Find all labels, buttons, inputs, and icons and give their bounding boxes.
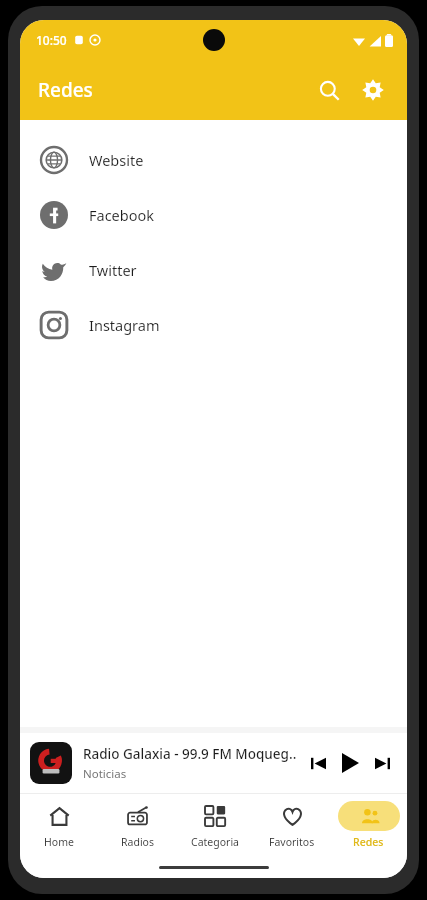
button[interactable]: Facebook	[20, 187, 407, 242]
staticText: Radios	[121, 835, 154, 849]
button[interactable]: Favoritos	[253, 794, 330, 856]
button[interactable]: Previous	[303, 748, 333, 778]
button[interactable]: Home	[20, 794, 98, 856]
button[interactable]: Settings	[351, 68, 395, 112]
staticText: Noticias	[83, 766, 127, 782]
button[interactable]: Play	[333, 746, 367, 780]
staticText: Twitter	[89, 260, 137, 280]
staticText: Redes	[38, 77, 93, 103]
button[interactable]: Next	[367, 748, 397, 778]
staticText: Favoritos	[269, 835, 315, 849]
button[interactable]: Instagram	[20, 297, 407, 352]
button[interactable]: Website	[20, 132, 407, 187]
button[interactable]: Radios	[98, 794, 176, 856]
staticText: Website	[89, 150, 144, 170]
staticText: Redes	[353, 835, 384, 849]
button[interactable]: Categoria	[176, 794, 253, 856]
staticText: Instagram	[89, 315, 160, 335]
button[interactable]: Redes	[330, 794, 407, 856]
button[interactable]: Twitter	[20, 242, 407, 297]
staticText: Radio Galaxia - 99.9 FM Moqueg..	[83, 745, 297, 763]
staticText: 10:50	[36, 32, 67, 48]
staticText: Facebook	[89, 205, 155, 225]
staticText: Home	[44, 835, 74, 849]
button[interactable]: Search	[307, 68, 351, 112]
staticText: Categoria	[191, 835, 239, 849]
button[interactable]: Radio Galaxia - 99.9 FM Moqueg..	[20, 733, 407, 793]
